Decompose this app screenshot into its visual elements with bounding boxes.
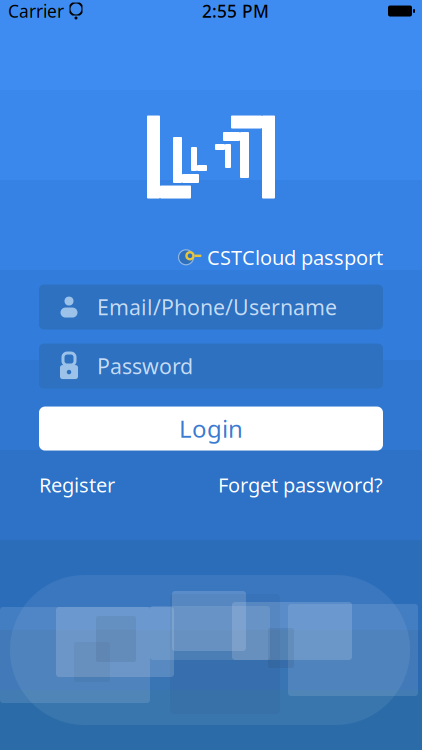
button[interactable]: CSTCloud passport (180, 244, 383, 271)
staticText: Carrier (8, 0, 64, 22)
button[interactable]: Register (39, 472, 115, 498)
button[interactable]: Login (39, 407, 383, 451)
staticText: CSTCloud passport (207, 244, 383, 271)
staticText: Register (39, 472, 115, 498)
button[interactable]: Forget password? (218, 472, 383, 498)
staticText: Email/Phone/Username (97, 293, 337, 321)
button[interactable]: Password (39, 344, 383, 389)
staticText: Login (179, 413, 243, 444)
staticText: Password (97, 352, 193, 380)
staticText: 2:55 PM (202, 0, 269, 22)
button[interactable]: Email/Phone/Username (39, 285, 383, 330)
staticText: Forget password? (218, 472, 383, 498)
